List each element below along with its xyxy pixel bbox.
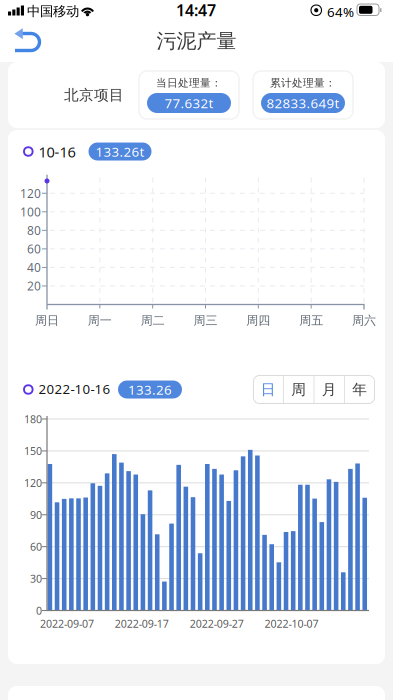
button[interactable]: 年 (345, 375, 374, 403)
staticText: 2022-10-16 (38, 380, 110, 398)
staticText: 60 (30, 540, 42, 554)
staticText: 30 (30, 571, 42, 586)
button[interactable]: 返回 (0, 20, 56, 62)
staticText: 82833.649t (266, 94, 339, 112)
staticText: 80 (27, 222, 41, 238)
staticText: 60 (27, 241, 41, 257)
staticText: 累计处理量： (270, 76, 336, 89)
staticText: 周六 (352, 313, 376, 328)
staticText: 40 (27, 259, 41, 275)
staticText: 133.26 (128, 381, 172, 398)
staticText: 周 (291, 380, 306, 398)
staticText: 150 (24, 444, 42, 458)
staticText: 周三 (193, 313, 217, 328)
button[interactable]: 日 (253, 375, 283, 403)
staticText: 周四 (246, 313, 270, 328)
staticText: 2022-09-07 (40, 616, 94, 631)
staticText: 月 (322, 380, 337, 398)
staticText: 年 (352, 380, 367, 398)
staticText: 周二 (141, 313, 165, 328)
staticText: 133.26t (95, 143, 144, 160)
staticText: 2022-09-17 (115, 616, 169, 631)
staticText: 日 (261, 380, 276, 398)
staticText: 180 (24, 412, 42, 426)
staticText: 77.632t (164, 94, 213, 112)
staticText: 污泥产量 (156, 29, 236, 53)
staticText: 100 (20, 204, 41, 220)
staticText: 0 (36, 603, 42, 618)
staticText: 120 (20, 185, 41, 201)
staticText: 14:47 (176, 0, 216, 21)
staticText: 90 (30, 508, 42, 522)
button[interactable]: 月 (314, 375, 344, 403)
staticText: 周五 (299, 313, 323, 328)
staticText: 20 (27, 278, 41, 294)
staticText: 当日处理量： (156, 76, 222, 89)
staticText: 中国移动 (27, 3, 79, 19)
staticText: 10-16 (38, 142, 75, 161)
button[interactable]: 周 (284, 375, 313, 403)
staticText: 64% (327, 3, 354, 21)
staticText: 周一 (88, 313, 112, 328)
staticText: 120 (24, 476, 42, 490)
staticText: 2022-09-27 (190, 616, 244, 631)
staticText: 2022-10-07 (265, 616, 319, 631)
staticText: 周日 (35, 313, 59, 328)
staticText: 北京项目 (64, 86, 124, 104)
